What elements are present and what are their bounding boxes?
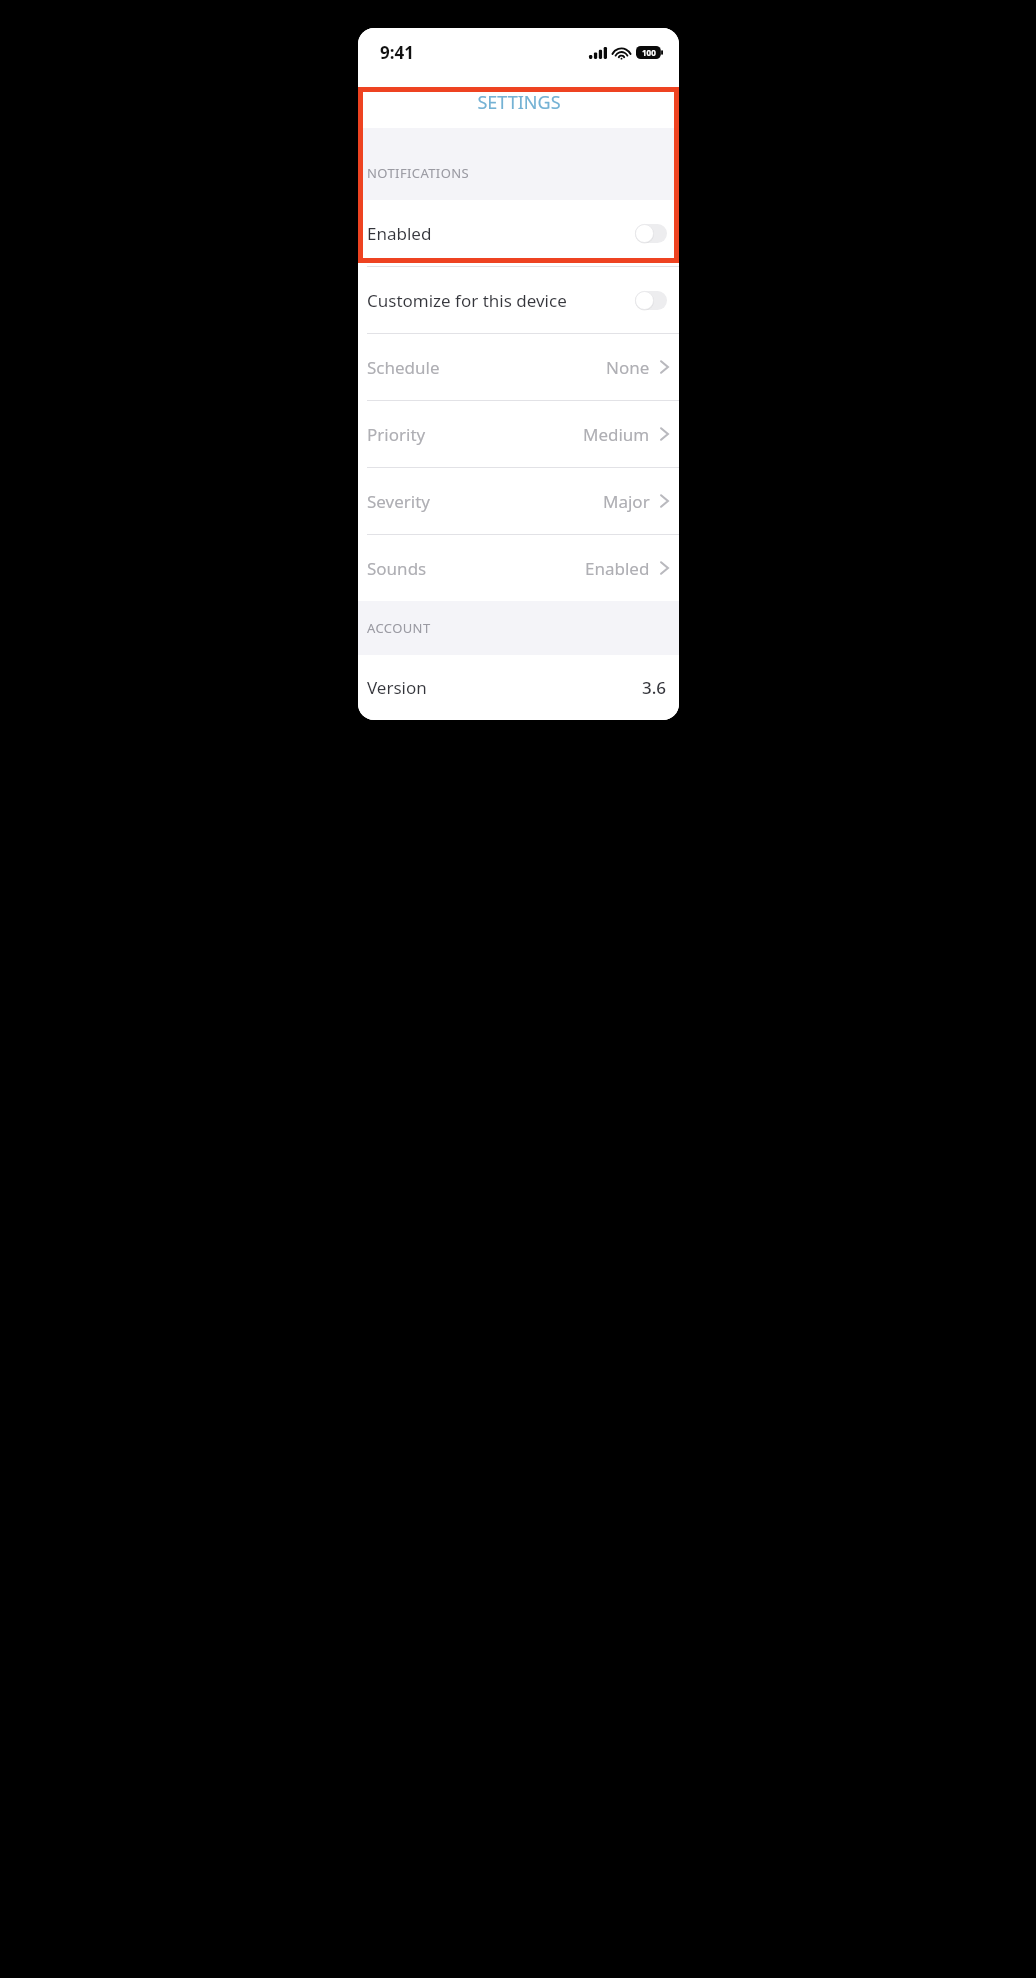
button[interactable]: Enabled [358,200,679,266]
button[interactable]: Schedule [358,334,679,400]
staticText: Enabled [585,557,650,580]
staticText: 9:41 [380,41,414,64]
staticText: Severity [367,490,603,513]
staticText: Customize for this device [367,289,635,312]
staticText: 3.6 [642,676,667,699]
button[interactable]: Priority [358,401,679,467]
button[interactable]: Version [358,655,679,720]
staticText: Priority [367,423,583,446]
staticText: Medium [583,423,650,446]
button[interactable]: Sounds [358,535,679,601]
button[interactable]: Customize for this device [358,267,679,333]
staticText: Enabled [367,222,635,245]
staticText: 100 [642,47,656,58]
staticText: Version [367,676,642,699]
staticText: ACCOUNT [367,619,431,637]
staticText: Sounds [367,557,585,580]
staticText: Major [603,490,650,513]
staticText: NOTIFICATIONS [367,164,470,182]
staticText: SETTINGS [477,90,561,115]
staticText: None [606,356,650,379]
button[interactable]: Severity [358,468,679,534]
staticText: Schedule [367,356,606,379]
